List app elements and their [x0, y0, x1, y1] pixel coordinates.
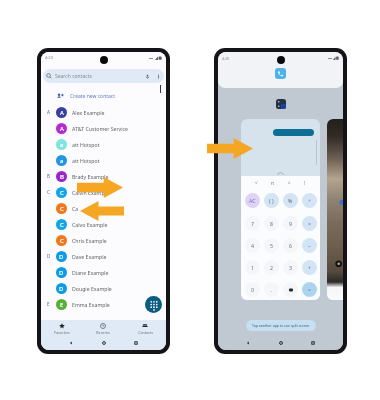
button[interactable]: 7 [245, 216, 260, 231]
staticText: Calvo Example [72, 221, 108, 228]
staticText: × [308, 220, 311, 227]
staticText: Search contacts [55, 73, 92, 80]
button[interactable]: a [41, 152, 166, 168]
button[interactable]: D [41, 280, 166, 296]
button[interactable]: 9 [283, 216, 298, 231]
staticText: B [60, 173, 64, 181]
other: Recents [311, 341, 315, 345]
staticText: a [60, 157, 64, 165]
staticText: Dave Example [72, 253, 107, 260]
staticText: A [60, 125, 64, 133]
staticText: D [59, 269, 64, 277]
button[interactable]: + [302, 260, 317, 275]
button[interactable]: × [302, 216, 317, 231]
staticText: Diane Example [72, 269, 109, 276]
staticText: 4:20 [45, 55, 53, 60]
button[interactable]: 1 [245, 260, 260, 275]
button[interactable]: Recents [82, 320, 124, 335]
staticText: Calvin Example [72, 189, 109, 196]
other: Back [69, 341, 73, 345]
staticText: π [271, 180, 274, 186]
button[interactable]: Tap another app to use split screen [252, 323, 310, 328]
other: Home [102, 341, 106, 345]
staticText: − [308, 242, 311, 249]
staticText: + [308, 264, 311, 271]
staticText: D [59, 253, 64, 261]
button[interactable]: ( ) [264, 193, 279, 208]
staticText: C [60, 221, 64, 229]
staticText: 8 [270, 220, 273, 227]
staticText: C [60, 237, 64, 245]
button[interactable]: C [41, 184, 166, 200]
button[interactable]: E [41, 296, 166, 312]
button[interactable]: 4 [245, 238, 260, 253]
button[interactable]: Create new contact [41, 88, 166, 104]
staticText: 6 [289, 242, 292, 249]
button[interactable]: Contacts [124, 320, 166, 335]
staticText: D [47, 253, 51, 259]
button[interactable]: Calculator app [276, 99, 286, 109]
staticText: Dougie Example [72, 285, 112, 292]
other: More options [156, 74, 161, 79]
staticText: Brady Example [72, 173, 109, 180]
button[interactable]: 5 [264, 238, 279, 253]
button[interactable]: B [41, 168, 166, 184]
staticText: Contacts [138, 330, 153, 335]
button[interactable]: C [41, 216, 166, 232]
staticText: 5 [270, 242, 273, 249]
button[interactable]: Phone app [275, 68, 286, 79]
staticText: ÷ [308, 197, 311, 204]
staticText: 7 [251, 220, 254, 227]
other: Home [279, 341, 283, 345]
staticText: D [59, 285, 64, 293]
button[interactable]: C [41, 200, 166, 216]
staticText: A [47, 109, 50, 115]
button[interactable]: 0 [245, 282, 260, 297]
button[interactable]: AC [245, 193, 260, 208]
staticText: 1 [251, 264, 254, 271]
button[interactable]: √ [241, 119, 320, 300]
staticText: C [60, 205, 64, 213]
other: Voice search [145, 74, 150, 79]
button[interactable]: . [264, 282, 279, 297]
button[interactable]: Search contacts [43, 69, 164, 83]
staticText: AT&T Customer Service [72, 125, 129, 132]
staticText: Create new contact [70, 93, 116, 100]
staticText: Chris Example [72, 237, 107, 244]
button[interactable]: 3 [283, 260, 298, 275]
button[interactable]: = [302, 282, 317, 297]
staticText: 9 [289, 220, 292, 227]
button[interactable]: ÷ [302, 193, 317, 208]
staticText: E [47, 301, 50, 307]
button[interactable]: % [283, 193, 298, 208]
staticText: Emma Example [72, 301, 110, 308]
staticText: AC [249, 197, 256, 204]
button[interactable]: D [41, 248, 166, 264]
button[interactable]: A [41, 104, 166, 120]
staticText: a [60, 141, 64, 149]
staticText: Ca [72, 205, 79, 212]
staticText: % [288, 197, 293, 204]
button[interactable]: 6 [283, 238, 298, 253]
button[interactable]: D [41, 264, 166, 280]
staticText: √ [255, 180, 258, 185]
button[interactable]: A [41, 120, 166, 136]
staticText: Recents [96, 330, 110, 335]
staticText: . [271, 286, 273, 293]
button[interactable]: 8 [264, 216, 279, 231]
button[interactable]: − [302, 238, 317, 253]
other: Recents [134, 341, 138, 345]
staticText: C [60, 189, 64, 197]
staticText: ^ [288, 180, 291, 186]
button[interactable]: Dial pad [145, 296, 162, 313]
button[interactable]: a [41, 136, 166, 152]
staticText: 4 [251, 242, 254, 249]
staticText: ! [304, 180, 306, 186]
button[interactable]: Favorites [41, 320, 82, 335]
button[interactable]: 2 [264, 260, 279, 275]
button[interactable] [327, 119, 343, 300]
other: Back [246, 341, 250, 345]
button[interactable]: C [41, 232, 166, 248]
staticText: Tap another app to use split screen [252, 323, 310, 328]
button[interactable] [283, 282, 298, 297]
